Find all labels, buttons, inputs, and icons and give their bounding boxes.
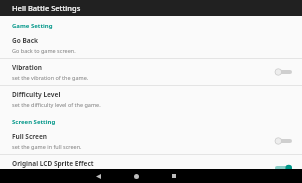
button[interactable]: Recent apps	[163, 169, 185, 183]
button[interactable]: Original LCD Sprite Effect	[0, 155, 302, 169]
staticText: set the game in full screen.	[12, 143, 82, 150]
staticText: Difficulty Level	[12, 90, 61, 99]
button[interactable]: Go Back	[0, 32, 302, 59]
button[interactable]: Full Screen	[0, 128, 302, 155]
staticText: Game Setting	[12, 22, 53, 30]
staticText: set the vibration of the game.	[12, 74, 89, 81]
button[interactable]: Vibration	[0, 59, 302, 86]
staticText: set the difficulty level of the game.	[12, 101, 101, 108]
staticText: Go back to game screen.	[12, 47, 76, 54]
staticText: Original LCD Sprite Effect	[12, 159, 94, 168]
staticText: Vibration	[12, 63, 42, 72]
staticText: Go Back	[12, 36, 39, 45]
staticText: Screen Setting	[12, 118, 56, 126]
button[interactable]: Back	[87, 169, 109, 183]
button[interactable]: Difficulty Level	[0, 86, 302, 112]
button[interactable]: Home	[125, 169, 147, 183]
staticText: Full Screen	[12, 132, 48, 141]
staticText: Hell Battle Settings	[12, 3, 81, 13]
